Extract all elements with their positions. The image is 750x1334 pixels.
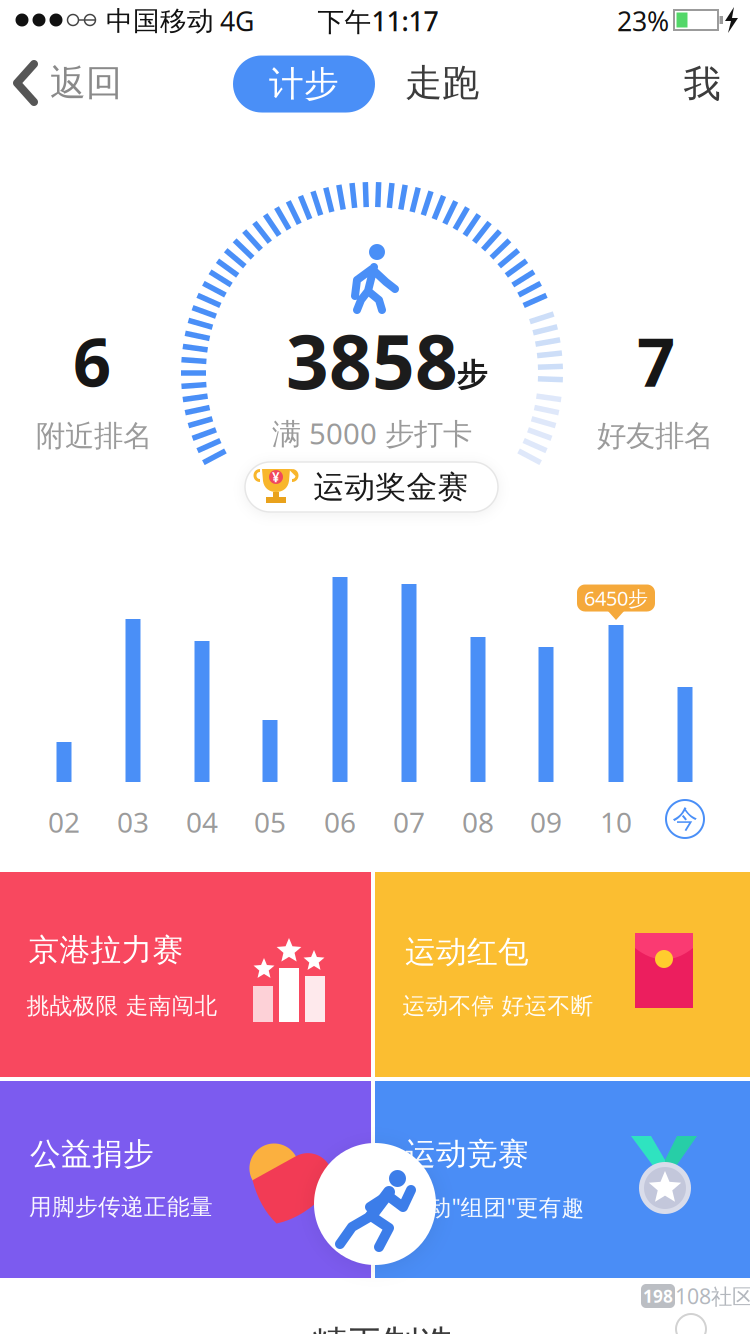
staticText: 返回 — [50, 61, 122, 105]
button[interactable]: 返回 — [12, 60, 122, 106]
staticText: 3858 — [286, 310, 458, 410]
staticText: 运动"组团"更有趣 — [405, 1192, 584, 1222]
staticText: 07 — [393, 803, 425, 841]
staticText: 用脚步传递正能量 — [29, 1193, 213, 1221]
staticText: 挑战极限 走南闯北 — [26, 992, 217, 1020]
staticText: 运动竞赛 — [405, 1135, 529, 1173]
staticText: 中国移动 — [106, 5, 214, 37]
staticText: 198 — [643, 1284, 673, 1307]
staticText: 今 — [672, 803, 697, 834]
staticText: ¥ — [272, 468, 280, 486]
staticText: 精工制造 — [311, 1322, 455, 1334]
staticText: 下午11:17 — [317, 3, 438, 39]
staticText: 6450步 — [584, 585, 648, 611]
staticText: 04 — [186, 803, 218, 841]
button[interactable]: 京港拉力赛 — [0, 872, 371, 1077]
staticText: 05 — [254, 803, 286, 841]
button[interactable]: 公益捐步 — [0, 1081, 371, 1278]
staticText: 108社区 — [675, 1282, 750, 1310]
button[interactable]: 运动竞赛 — [375, 1081, 750, 1278]
staticText: 7 — [637, 317, 675, 405]
staticText: 09 — [530, 803, 562, 841]
staticText: 运动不停 好运不断 — [402, 992, 593, 1020]
button[interactable]: 计步 — [233, 55, 375, 112]
staticText: 03 — [117, 803, 149, 841]
staticText: 23% — [617, 3, 669, 39]
staticText: 公益捐步 — [30, 1135, 154, 1173]
staticText: 06 — [324, 803, 356, 841]
staticText: 4G — [220, 3, 254, 39]
staticText: 附近排名 — [36, 418, 152, 454]
staticText: 好友排名 — [597, 418, 713, 454]
staticText: 运动奖金赛 — [313, 468, 468, 506]
staticText: 步 — [456, 356, 487, 394]
staticText: 08 — [462, 803, 494, 841]
staticText: 我 — [683, 61, 720, 107]
staticText: 计步 — [269, 63, 339, 105]
staticText: 京港拉力赛 — [28, 931, 183, 969]
button[interactable]: 走跑 — [405, 60, 479, 106]
button[interactable]: 我 — [683, 61, 720, 107]
staticText: 6 — [73, 317, 111, 405]
staticText: 满 5000 步打卡 — [272, 413, 472, 452]
staticText: 走跑 — [405, 60, 479, 106]
staticText: 运动红包 — [405, 933, 529, 971]
button[interactable]: ¥ — [245, 462, 498, 512]
staticText: 10 — [600, 803, 632, 841]
staticText: 02 — [48, 803, 80, 841]
button[interactable] — [314, 1143, 436, 1265]
button[interactable]: 运动红包 — [375, 872, 750, 1077]
